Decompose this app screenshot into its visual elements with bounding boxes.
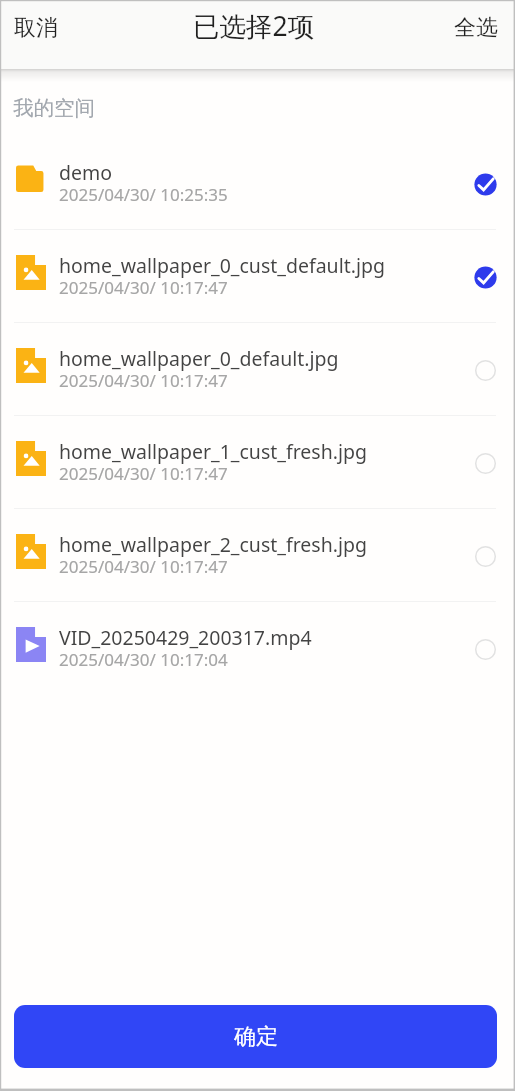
button[interactable]: demo	[0, 137, 515, 229]
button[interactable]: home_wallpaper_1_cust_fresh.jpg	[0, 416, 515, 508]
staticText: 全选	[454, 14, 498, 42]
button[interactable]: Select	[474, 359, 497, 382]
staticText: 已选择2项	[193, 8, 315, 44]
button[interactable]: home_wallpaper_0_default.jpg	[0, 323, 515, 415]
staticText: 2025/04/30/ 10:25:35	[59, 183, 228, 206]
staticText: 2025/04/30/ 10:17:47	[59, 462, 228, 485]
button[interactable]: Select	[474, 452, 497, 475]
staticText: home_wallpaper_0_default.jpg	[59, 345, 339, 372]
button[interactable]: home_wallpaper_0_cust_default.jpg	[0, 230, 515, 322]
staticText: VID_20250429_200317.mp4	[59, 624, 312, 651]
staticText: 2025/04/30/ 10:17:47	[59, 276, 228, 299]
button[interactable]: Select	[474, 638, 497, 661]
button[interactable]: 确定	[14, 1005, 497, 1068]
staticText: demo	[59, 159, 113, 186]
staticText: 我的空间	[13, 95, 95, 121]
button[interactable]: 取消	[0, 10, 71, 46]
staticText: 2025/04/30/ 10:17:04	[59, 648, 228, 671]
button[interactable]: Selected	[474, 173, 497, 196]
staticText: 2025/04/30/ 10:17:47	[59, 369, 228, 392]
button[interactable]: Select	[474, 545, 497, 568]
staticText: home_wallpaper_2_cust_fresh.jpg	[59, 531, 367, 558]
staticText: home_wallpaper_1_cust_fresh.jpg	[59, 438, 367, 465]
button[interactable]: home_wallpaper_2_cust_fresh.jpg	[0, 509, 515, 601]
staticText: home_wallpaper_0_cust_default.jpg	[59, 252, 385, 279]
button[interactable]: Selected	[474, 266, 497, 289]
staticText: 2025/04/30/ 10:17:47	[59, 555, 228, 578]
button[interactable]: 全选	[441, 10, 515, 46]
button[interactable]: VID_20250429_200317.mp4	[0, 602, 515, 694]
staticText: 取消	[14, 14, 58, 42]
staticText: 确定	[234, 1023, 278, 1051]
